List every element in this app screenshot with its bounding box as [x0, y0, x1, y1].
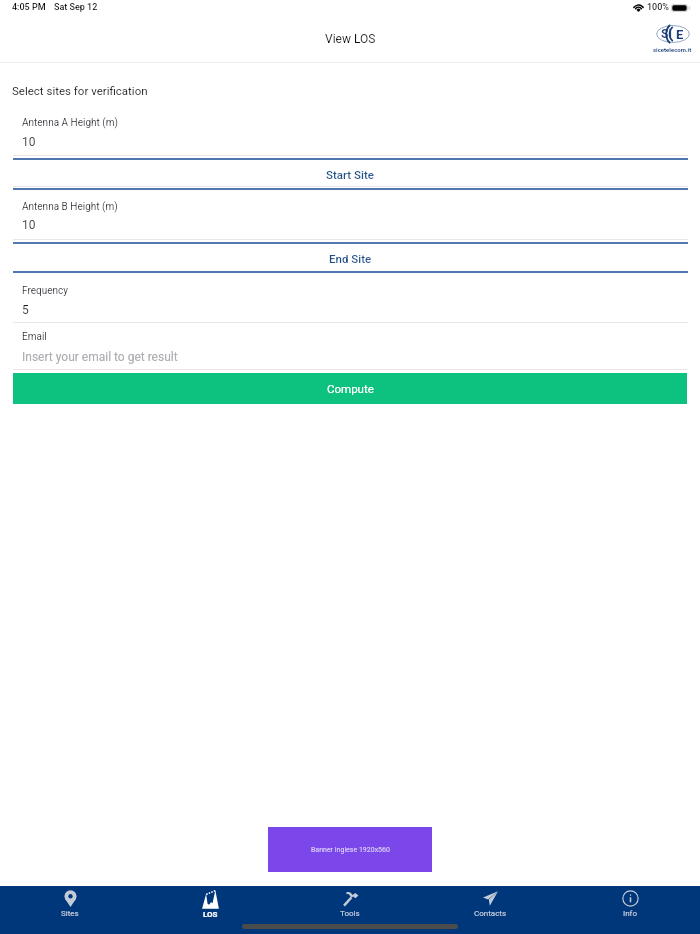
staticText: E: [676, 27, 684, 42]
button[interactable]: Banner Inglese 1920x560: [268, 827, 432, 872]
staticText: Frequency: [22, 285, 68, 297]
staticText: 4:05 PM: [12, 2, 46, 13]
staticText: Sat Sep 12: [54, 2, 98, 13]
button[interactable]: SICE Telecom website: [652, 22, 692, 62]
staticText: LOS: [203, 910, 218, 919]
staticText: 10: [22, 135, 36, 149]
staticText: 5: [22, 303, 29, 317]
button[interactable]: End Site: [0, 244, 700, 272]
button[interactable]: Tools: [280, 886, 420, 918]
staticText: Compute: [327, 382, 374, 395]
staticText: 10: [22, 218, 36, 232]
button[interactable]: Start Site: [0, 160, 700, 188]
staticText: Info: [623, 909, 637, 918]
staticText: SI: [661, 27, 672, 41]
staticText: Select sites for verification: [12, 84, 148, 97]
staticText: Start Site: [326, 168, 374, 181]
button[interactable]: Contacts: [420, 886, 560, 918]
staticText: Antenna B Height (m): [22, 201, 118, 213]
button[interactable]: Sites: [0, 886, 140, 918]
staticText: Contacts: [474, 909, 507, 918]
staticText: End Site: [329, 252, 372, 265]
staticText: Antenna A Height (m): [22, 117, 119, 129]
staticText: Banner Inglese 1920x560: [311, 846, 390, 854]
staticText: Tools: [340, 909, 360, 918]
staticText: Sites: [61, 909, 79, 918]
button[interactable]: Compute: [13, 373, 687, 404]
button[interactable]: LOS: [140, 886, 280, 919]
staticText: 100%: [647, 2, 669, 13]
button[interactable]: Info: [560, 886, 700, 918]
staticText: sicetelecom.it: [653, 46, 692, 53]
staticText: View LOS: [325, 32, 376, 46]
staticText: Email: [22, 331, 47, 343]
staticText: Insert your email to get result: [22, 350, 178, 364]
